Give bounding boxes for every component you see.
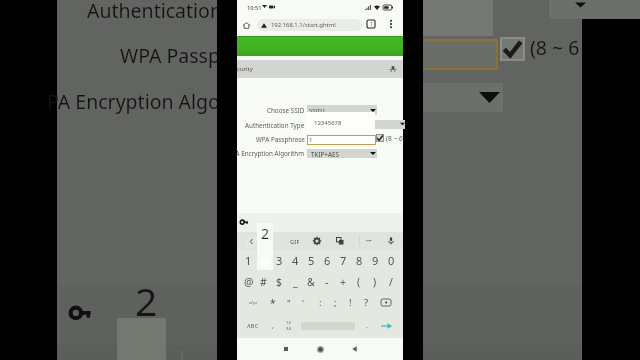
button[interactable]: 6 [319, 250, 335, 271]
button[interactable]: More [360, 232, 378, 250]
staticText: ? [364, 296, 369, 309]
staticText: Authentication Type [87, 0, 271, 24]
button[interactable]: # [256, 271, 271, 292]
button[interactable]: $ [271, 271, 287, 292]
staticText: + [340, 275, 347, 289]
button[interactable]: . [360, 313, 374, 338]
staticText: WPA Passphrase [120, 42, 271, 69]
button[interactable]: Enter [375, 313, 397, 338]
staticText: - [325, 275, 329, 289]
staticText: 2 [261, 224, 270, 243]
button[interactable]: Settings [308, 232, 326, 250]
staticText: GIF [290, 238, 300, 245]
button[interactable]: 9 [367, 250, 383, 271]
staticText: curity [237, 65, 253, 73]
staticText: 6 [324, 253, 331, 268]
button[interactable]: 1 [241, 250, 256, 271]
button[interactable]: Backspace [377, 292, 395, 313]
staticText: $ [276, 275, 283, 289]
staticText: : [319, 296, 322, 309]
staticText: _ [293, 275, 298, 289]
button[interactable]: + [335, 271, 351, 292]
button[interactable]: SSID1 [307, 105, 377, 115]
staticText: PA Encryption Algorithm [47, 88, 271, 115]
staticText: # [260, 275, 267, 289]
button[interactable]: * [265, 292, 280, 313]
button[interactable]: " [281, 292, 296, 313]
staticText: * [270, 296, 276, 310]
staticText: 0 [388, 253, 395, 268]
button[interactable]: ; [328, 292, 343, 313]
button[interactable]: TKIP+AES [307, 149, 377, 158]
staticText: ' [302, 297, 305, 309]
button[interactable]: Previous [242, 232, 260, 250]
button[interactable]: More options [384, 17, 398, 31]
button[interactable]: 12345678 [307, 112, 375, 134]
staticText: =\< [249, 299, 258, 307]
button[interactable]: ? [359, 292, 374, 313]
button[interactable]: ( [351, 271, 367, 292]
button[interactable]: 0 [383, 250, 399, 271]
button[interactable]: Home [311, 338, 329, 360]
button[interactable]: ABC [241, 313, 265, 338]
button[interactable]: Stickers [331, 232, 349, 250]
button[interactable] [376, 134, 384, 142]
staticText: 12 34 [286, 320, 291, 331]
staticText: ABC [247, 322, 259, 329]
button[interactable]: Space [301, 313, 355, 338]
staticText: (8 ~ 6 [530, 34, 580, 61]
button[interactable]: Home [239, 17, 255, 33]
button[interactable]: / [383, 271, 399, 292]
staticText: (8 ~ 6 [386, 134, 403, 143]
button[interactable]: : [313, 292, 328, 313]
button[interactable]: =\< [243, 292, 263, 313]
staticText: 4 [292, 253, 299, 268]
button[interactable]: ! [343, 292, 358, 313]
staticText: / [389, 275, 393, 289]
staticText: ; [334, 296, 337, 309]
staticText: WPA Passphrase [256, 135, 305, 144]
staticText: ••• [366, 238, 372, 245]
button[interactable]: 8 [351, 250, 367, 271]
staticText: @ [244, 275, 254, 289]
button[interactable]: Back [345, 338, 363, 360]
staticText: 192.168.1.1/start.ghtml [271, 21, 336, 29]
staticText: TKIP+AES [311, 150, 339, 159]
button[interactable]: 4 [287, 250, 303, 271]
staticText: 1 [309, 136, 313, 144]
staticText: " [287, 297, 291, 309]
button[interactable]: Voice input [382, 232, 400, 250]
button[interactable]: Numbers [281, 313, 295, 338]
button[interactable]: GIF [286, 232, 304, 250]
button[interactable]: 7 [335, 250, 351, 271]
staticText: 1 [245, 253, 252, 268]
button[interactable]: 2 [256, 250, 271, 271]
button[interactable]: , [266, 313, 280, 338]
button[interactable]: _ [287, 271, 303, 292]
staticText: SSID1 [309, 107, 326, 115]
button[interactable]: ' [296, 292, 311, 313]
staticText: ( [357, 275, 361, 289]
button[interactable]: 3 [271, 250, 287, 271]
button[interactable]: 192.168.1.1/start.ghtml [257, 19, 362, 31]
button[interactable]: 5 [303, 250, 319, 271]
staticText: & [307, 275, 315, 289]
staticText: ! [349, 296, 352, 309]
staticText: Choose SSID [267, 106, 305, 115]
staticText: 8 [356, 253, 363, 268]
button[interactable]: - [319, 271, 335, 292]
button[interactable] [371, 120, 405, 129]
staticText: 1 [370, 21, 373, 28]
staticText: Authentication Type [245, 121, 305, 130]
button[interactable]: @ [241, 271, 256, 292]
button[interactable]: Recents [277, 338, 295, 360]
button[interactable]: ) [367, 271, 383, 292]
button[interactable]: Tabs [363, 16, 379, 32]
staticText: PA Encryption Algorithm [232, 149, 305, 158]
staticText: 9 [372, 253, 379, 268]
button[interactable]: & [303, 271, 319, 292]
button[interactable]: 1 [307, 135, 376, 145]
staticText: 10:51 [247, 4, 262, 12]
staticText: 5 [308, 253, 315, 268]
